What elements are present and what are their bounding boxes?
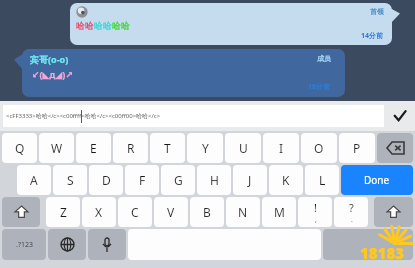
staticText: Z: [60, 204, 67, 220]
button[interactable]: I: [263, 133, 299, 163]
button[interactable]: 哈哈哈哈哈哈: [70, 3, 392, 45]
button[interactable]: .?123: [2, 229, 46, 260]
button[interactable]: F: [125, 165, 159, 195]
staticText: 宾哥(o-o): [30, 53, 69, 65]
button[interactable]: Z: [46, 197, 80, 227]
button[interactable]: N: [226, 197, 260, 227]
button[interactable]: D: [89, 165, 123, 195]
button[interactable]: <cFF3333>哈哈</c><c00ffff>哈哈</c><c00ff00>哈…: [3, 105, 384, 127]
button[interactable]: M: [262, 197, 296, 227]
staticText: ,: [315, 215, 317, 225]
button[interactable]: Shift: [2, 197, 40, 227]
staticText: N: [238, 204, 248, 220]
staticText: 18分前: [308, 82, 331, 92]
staticText: L: [319, 172, 326, 188]
staticText: Q: [15, 140, 25, 156]
staticText: J: [248, 172, 252, 188]
button[interactable]: B: [190, 197, 224, 227]
button[interactable]: !: [298, 197, 332, 227]
button[interactable]: 宾哥(o-o): [22, 49, 345, 97]
staticText: .: [351, 215, 353, 225]
button[interactable]: S: [53, 165, 87, 195]
button[interactable]: ?: [334, 197, 368, 227]
staticText: I: [279, 140, 284, 156]
button[interactable]: H: [197, 165, 231, 195]
button[interactable]: O: [301, 133, 337, 163]
staticText: X: [95, 204, 103, 220]
staticText: 成员: [317, 54, 331, 63]
staticText: Done: [364, 173, 390, 187]
staticText: D: [102, 172, 111, 188]
button[interactable]: T: [150, 133, 185, 163]
staticText: U: [239, 140, 248, 156]
staticText: A: [30, 172, 38, 188]
button[interactable]: C: [118, 197, 152, 227]
staticText: M: [274, 204, 285, 220]
staticText: !: [314, 200, 317, 215]
button[interactable]: Q: [2, 133, 37, 163]
staticText: 14分前: [361, 31, 384, 41]
staticText: G: [174, 172, 183, 188]
staticText: R: [127, 140, 135, 156]
button[interactable]: Y: [187, 133, 223, 163]
staticText: H: [210, 172, 219, 188]
staticText: K: [282, 172, 290, 188]
button[interactable]: X: [82, 197, 116, 227]
button[interactable]: W: [39, 133, 74, 163]
staticText: .?123: [16, 240, 33, 250]
button[interactable]: K: [269, 165, 303, 195]
staticText: F: [139, 172, 146, 188]
staticText: Y: [202, 140, 209, 156]
button[interactable]: R: [113, 133, 148, 163]
button[interactable]: U: [225, 133, 261, 163]
staticText: E: [90, 140, 97, 156]
staticText: 18183: [360, 243, 404, 263]
button[interactable]: E: [76, 133, 111, 163]
button[interactable]: Shift: [374, 197, 413, 227]
staticText: ↙(◣д◢)↗: [32, 68, 73, 80]
button[interactable]: Done: [341, 165, 413, 195]
staticText: O: [314, 140, 324, 156]
staticText: 首领: [370, 7, 384, 16]
staticText: T: [164, 140, 171, 156]
staticText: B: [203, 204, 211, 220]
staticText: S: [67, 172, 74, 188]
staticText: W: [51, 140, 63, 156]
button[interactable]: V: [154, 197, 188, 227]
button[interactable]: P: [339, 133, 375, 163]
staticText: C: [131, 204, 139, 220]
button[interactable]: A: [17, 165, 51, 195]
staticText: 哈哈哈哈哈哈: [76, 20, 130, 31]
staticText: P: [353, 140, 361, 156]
button[interactable]: J: [233, 165, 267, 195]
button[interactable]: Send: [385, 101, 415, 131]
staticText: V: [167, 204, 175, 220]
button[interactable]: [323, 229, 413, 260]
button[interactable]: G: [161, 165, 195, 195]
staticText: ?: [349, 200, 354, 215]
button[interactable]: Voice input: [88, 229, 126, 260]
button[interactable]: Change language: [48, 229, 86, 260]
button[interactable]: L: [305, 165, 339, 195]
staticText: <cFF3333>哈哈</c><c00ffff>哈哈</c><c00ff00>哈…: [6, 112, 161, 120]
button[interactable]: Backspace: [377, 133, 413, 163]
